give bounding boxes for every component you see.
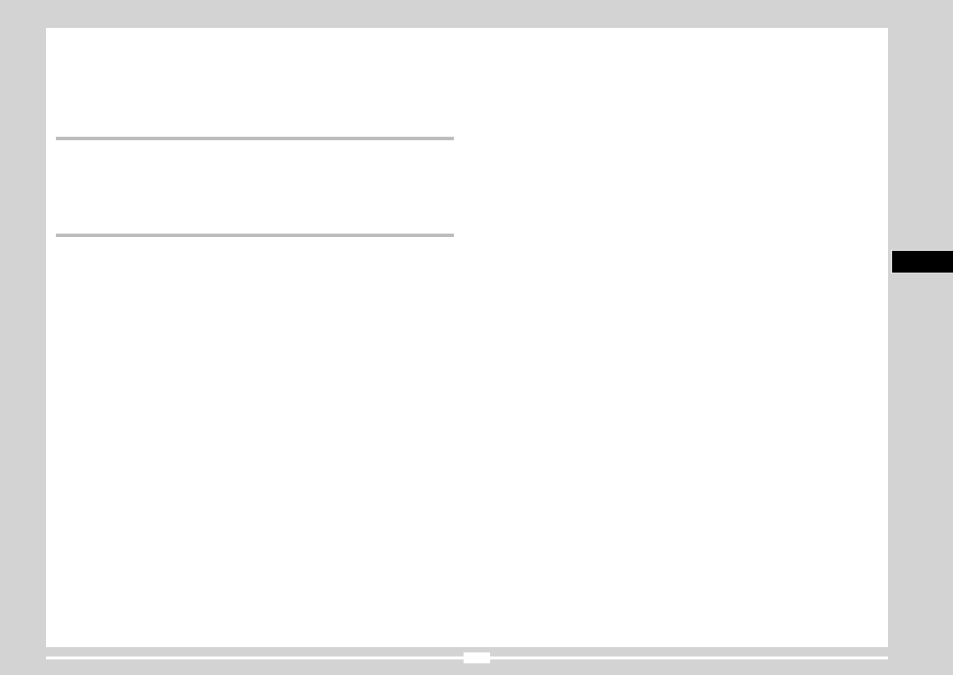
button[interactable]: Vertical scrollbar: [891, 250, 953, 274]
button[interactable]: Horizontal scrollbar: [464, 652, 490, 663]
button[interactable]: Document page: [46, 28, 888, 647]
